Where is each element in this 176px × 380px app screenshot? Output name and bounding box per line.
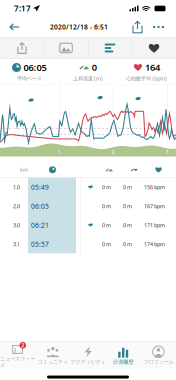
staticText: 心拍数平均 (bpm) — [126, 75, 167, 82]
staticText: 167 bpm — [144, 203, 165, 210]
button[interactable]: 計測履歴 — [106, 342, 141, 369]
staticText: アクティビティ — [70, 359, 105, 365]
button[interactable]: アクティビティ — [70, 342, 106, 369]
staticText: 0 m — [123, 241, 132, 248]
staticText: 0 m — [102, 203, 111, 210]
staticText: 1 — [57, 148, 60, 156]
staticText: 0 m — [123, 203, 132, 210]
staticText: 2020/12/18 - 6:51 — [50, 23, 108, 31]
staticText: 174 bpm — [144, 241, 165, 248]
staticText: 3 — [165, 148, 168, 156]
button[interactable]: More options — [147, 17, 165, 37]
staticText: 2.0 — [13, 203, 20, 210]
staticText: 0 m — [123, 222, 132, 229]
staticText: 0 m — [102, 241, 111, 248]
staticText: km — [20, 166, 28, 173]
button[interactable]: プロフィール — [141, 342, 176, 369]
staticText: 05:49 — [31, 183, 49, 192]
button[interactable]: Splits — [88, 37, 132, 59]
staticText: 3.0 — [13, 222, 20, 229]
button[interactable]: Photos — [44, 37, 88, 59]
button[interactable]: Export — [0, 37, 44, 59]
staticText: 3.1 — [13, 241, 20, 248]
button[interactable]: コミュニティ — [35, 342, 70, 369]
staticText: 2 — [21, 342, 24, 349]
staticText: 05:57 — [31, 240, 49, 249]
staticText: 156 bpm — [144, 184, 165, 191]
button[interactable]: Heart rate — [132, 37, 176, 59]
button[interactable]: Back — [9, 17, 30, 37]
staticText: 7:17 — [14, 3, 31, 14]
staticText: 0 m — [102, 222, 111, 229]
staticText: 06:05 — [24, 61, 47, 74]
button[interactable]: 2 — [0, 342, 35, 369]
staticText: 171 bpm — [144, 222, 165, 229]
staticText: 0 — [92, 61, 97, 73]
staticText: 1.0 — [13, 184, 20, 191]
staticText: 0 m — [123, 184, 132, 191]
staticText: 計測履歴 — [113, 359, 133, 365]
button[interactable]: Share — [128, 17, 147, 37]
staticText: 164 — [145, 61, 160, 73]
staticText: プロフィール — [143, 359, 173, 365]
staticText: 06:05 — [31, 202, 49, 211]
staticText: コミュニティ — [38, 359, 68, 365]
staticText: 06:21 — [31, 221, 49, 230]
staticText: 0 m — [102, 184, 111, 191]
staticText: 上昇高度 (m) — [73, 75, 103, 82]
staticText: 平均ペース — [17, 75, 42, 82]
staticText: 2 — [111, 148, 114, 156]
staticText: ニュースフィード — [0, 355, 35, 368]
